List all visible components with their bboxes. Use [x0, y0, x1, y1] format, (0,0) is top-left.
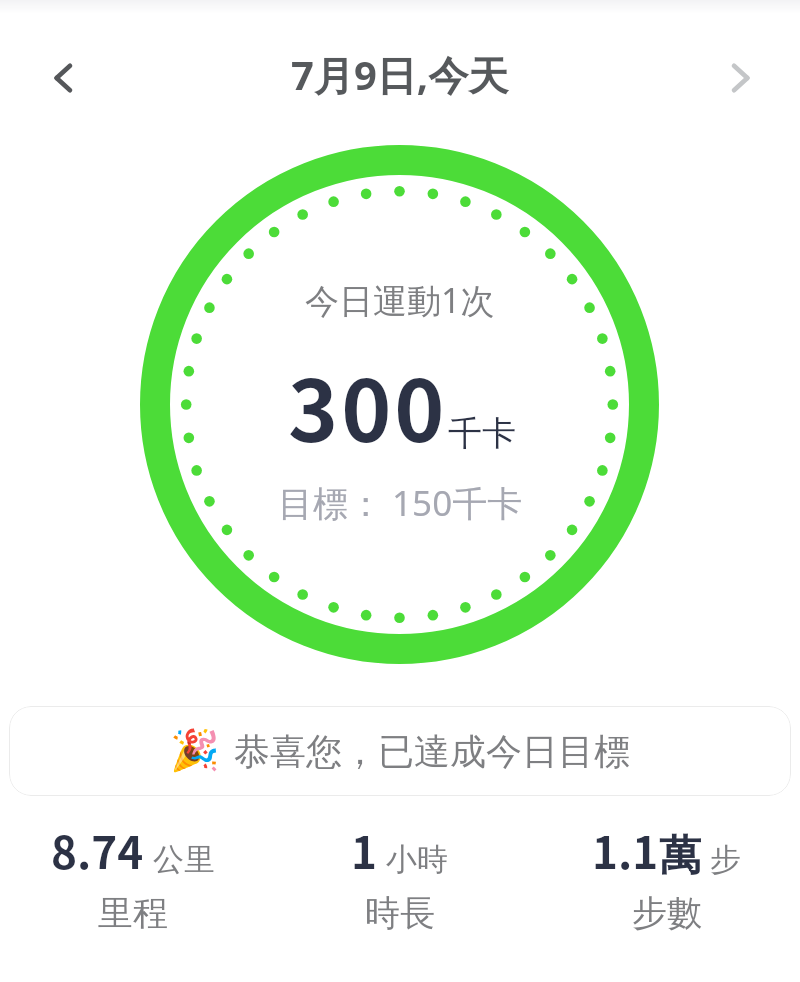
staticText: 1.1	[592, 818, 659, 882]
staticText: 300	[288, 343, 448, 466]
button[interactable]: Next day	[712, 47, 774, 109]
staticText: 🎉	[170, 727, 220, 774]
staticText: 步	[710, 840, 741, 879]
button[interactable]: 1	[266, 818, 533, 935]
staticText: 今日運動1次	[305, 277, 495, 323]
button[interactable]: 8.74	[0, 818, 266, 935]
button[interactable]: Previous day	[30, 47, 92, 109]
staticText: 小時	[386, 840, 448, 879]
button[interactable]: 🎉	[9, 706, 791, 796]
button[interactable]: 1.1	[533, 818, 800, 935]
staticText: 8.74	[51, 818, 144, 882]
staticText: 恭喜您，已達成今日目標	[234, 729, 630, 774]
staticText: 步數	[632, 891, 702, 935]
staticText: 千卡	[448, 412, 516, 455]
staticText: 里程	[98, 891, 168, 935]
staticText: 時長	[365, 891, 435, 935]
staticText: 公里	[153, 840, 215, 879]
staticText: 萬	[659, 830, 701, 883]
staticText: 目標： 150千卡	[278, 479, 523, 527]
staticText: 7月9日,今天	[291, 47, 509, 102]
staticText: 1	[351, 818, 377, 882]
